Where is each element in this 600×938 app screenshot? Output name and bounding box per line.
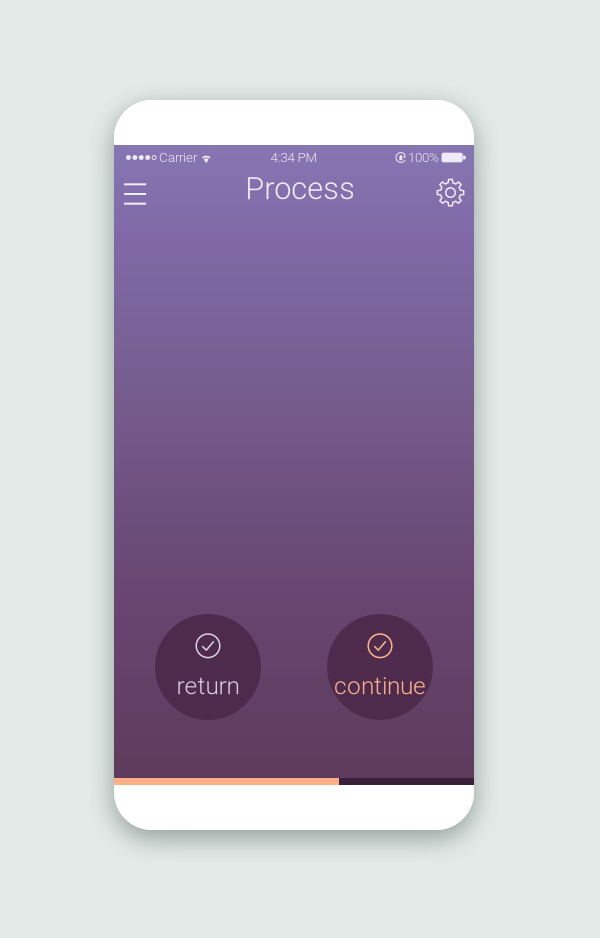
- staticText: 100%: [408, 150, 439, 165]
- staticText: Process: [245, 171, 355, 207]
- button[interactable]: Settings: [428, 171, 472, 215]
- staticText: Carrier: [159, 150, 197, 165]
- button[interactable]: return: [155, 614, 261, 720]
- button[interactable]: continue: [327, 614, 433, 720]
- staticText: 4:34 PM: [270, 150, 317, 165]
- staticText: return: [176, 672, 239, 700]
- staticText: continue: [334, 672, 426, 700]
- button[interactable]: Menu: [113, 171, 157, 215]
